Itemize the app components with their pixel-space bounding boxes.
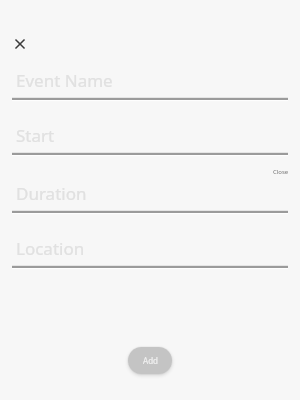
button[interactable]: Close xyxy=(273,168,289,176)
button[interactable]: Duration xyxy=(0,179,300,215)
staticText: Event Name xyxy=(16,69,113,92)
button[interactable]: Event Name xyxy=(0,66,300,102)
button[interactable]: Location xyxy=(0,234,300,270)
staticText: Start xyxy=(16,124,55,147)
button[interactable]: Add xyxy=(128,347,172,374)
button[interactable]: Close xyxy=(6,30,34,58)
button[interactable]: Start xyxy=(0,121,300,157)
staticText: Location xyxy=(16,237,85,260)
staticText: Close xyxy=(273,168,289,176)
staticText: Add xyxy=(143,355,158,366)
staticText: Duration xyxy=(16,182,87,205)
